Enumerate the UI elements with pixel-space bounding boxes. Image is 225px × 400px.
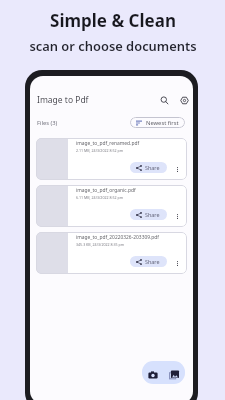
- staticText: 2.11 MB, 24/3/2022 8:52 pm: [76, 148, 124, 153]
- button[interactable]: Share: [130, 256, 167, 267]
- staticText: 345.3 KB, 24/3/2022 8:35 pm: [76, 242, 125, 247]
- button[interactable]: Search: [156, 92, 172, 108]
- staticText: image_to_pdf_renamed.pdf: [76, 140, 140, 147]
- staticText: Files (3): [37, 119, 58, 127]
- staticText: 6.11 MB, 24/3/2022 8:52 pm: [76, 195, 124, 200]
- staticText: Share: [145, 211, 160, 218]
- button[interactable]: Settings: [176, 92, 192, 108]
- button[interactable]: More options: [168, 185, 187, 227]
- staticText: Image to Pdf: [37, 94, 89, 106]
- button[interactable]: Gallery: [164, 363, 184, 383]
- button[interactable]: image_to_pdf_20220326-203309.pdf: [36, 232, 187, 274]
- staticText: Simple & Clean: [50, 9, 176, 32]
- button[interactable]: More options: [168, 232, 187, 274]
- button[interactable]: Newest first: [130, 117, 185, 128]
- staticText: image_to_pdf_organic.pdf: [76, 187, 136, 194]
- button[interactable]: Share: [130, 209, 167, 220]
- button[interactable]: More options: [168, 138, 187, 180]
- staticText: image_to_pdf_20220326-203309.pdf: [76, 234, 160, 241]
- button[interactable]: Camera: [143, 363, 163, 383]
- staticText: Share: [145, 258, 160, 265]
- button[interactable]: image_to_pdf_renamed.pdf: [36, 138, 187, 180]
- button[interactable]: Share: [130, 162, 167, 173]
- button[interactable]: image_to_pdf_organic.pdf: [36, 185, 187, 227]
- staticText: scan or choose documents: [29, 37, 197, 55]
- staticText: Newest first: [146, 119, 179, 127]
- staticText: Share: [145, 164, 160, 171]
